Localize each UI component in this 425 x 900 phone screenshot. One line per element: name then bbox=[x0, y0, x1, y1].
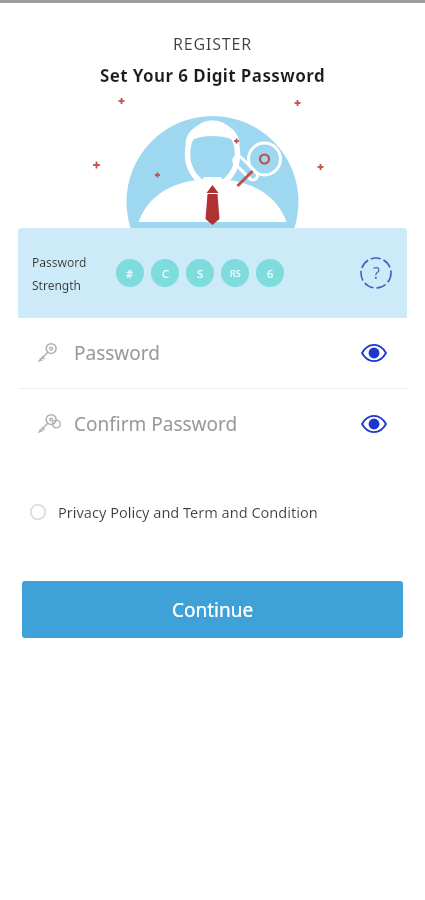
staticText: Confirm Password bbox=[74, 411, 238, 437]
button[interactable]: 6 bbox=[256, 259, 284, 287]
staticText: Privacy Policy and Term and Condition bbox=[58, 502, 318, 522]
button[interactable]: Show Password bbox=[359, 338, 389, 368]
button[interactable]: # bbox=[116, 259, 144, 287]
staticText: Continue bbox=[172, 597, 254, 623]
button[interactable]: S bbox=[186, 259, 214, 287]
staticText: RS bbox=[230, 267, 241, 279]
staticText: ? bbox=[373, 262, 380, 284]
button[interactable]: Password bbox=[18, 318, 407, 388]
staticText: S bbox=[197, 266, 204, 281]
button[interactable]: Privacy Policy and Term and Condition bbox=[30, 492, 395, 532]
staticText: REGISTER bbox=[0, 33, 425, 55]
button[interactable]: Show Confirm Password bbox=[359, 409, 389, 439]
button[interactable]: Password bbox=[18, 228, 407, 318]
button[interactable]: RS bbox=[221, 259, 249, 287]
staticText: Password bbox=[32, 254, 87, 270]
button[interactable]: Confirm Password bbox=[18, 389, 407, 459]
staticText: Set Your 6 Digit Password bbox=[0, 64, 425, 87]
staticText: 6 bbox=[267, 266, 274, 281]
button[interactable]: Help bbox=[359, 256, 393, 290]
staticText: Password bbox=[74, 340, 160, 366]
button[interactable]: C bbox=[151, 259, 179, 287]
staticText: C bbox=[162, 266, 169, 281]
staticText: Strength bbox=[32, 277, 81, 293]
staticText: # bbox=[126, 266, 134, 281]
button[interactable]: Continue bbox=[22, 581, 403, 638]
